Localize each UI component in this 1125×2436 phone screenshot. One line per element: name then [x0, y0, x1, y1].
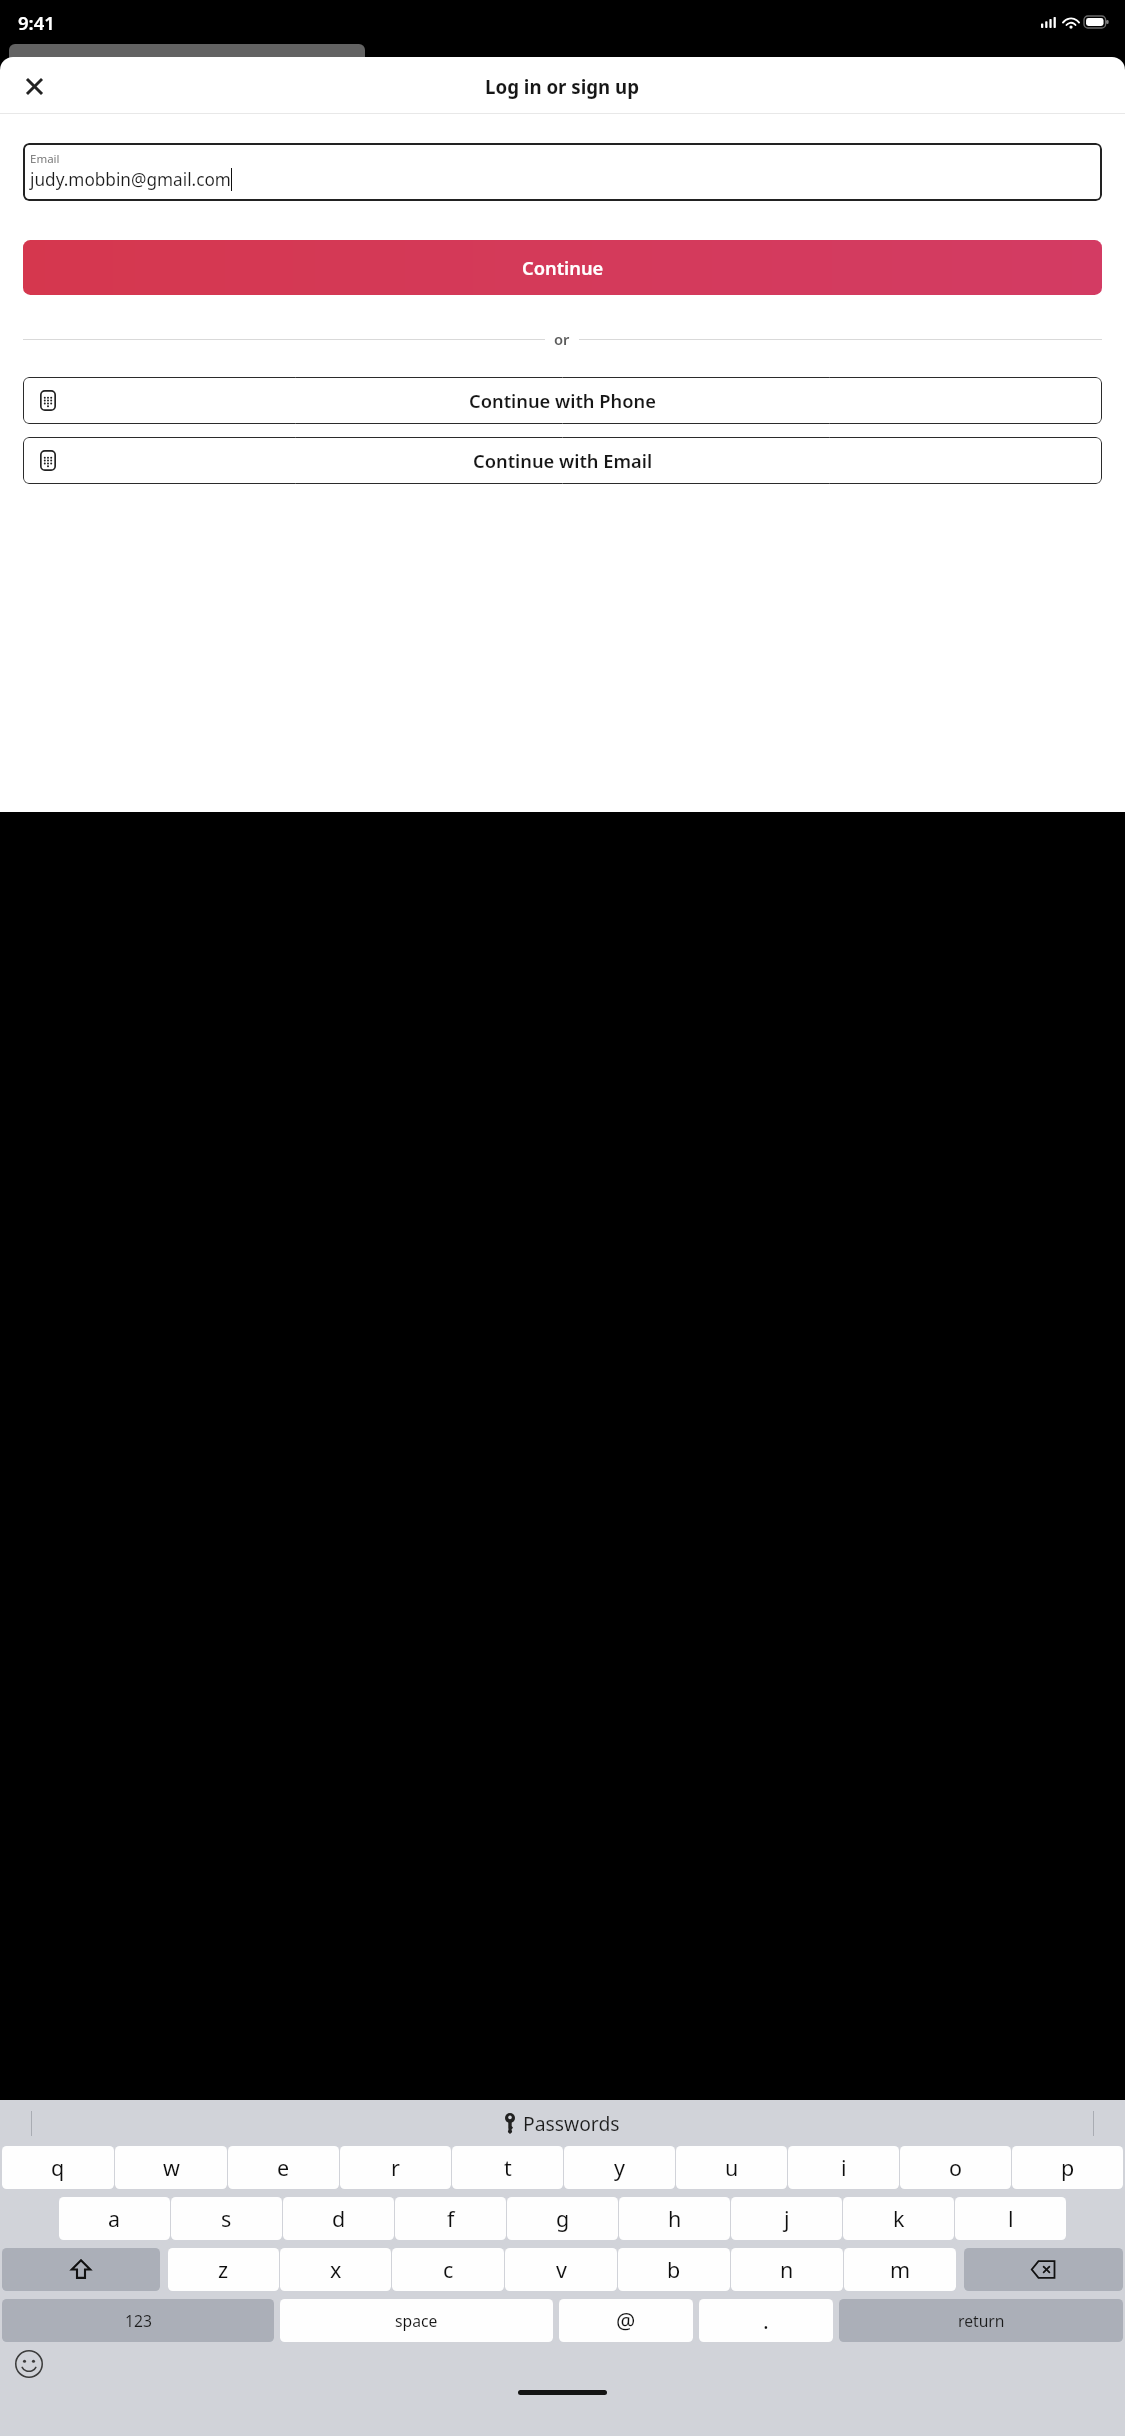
staticText: o [949, 2153, 963, 2182]
staticText: 123 [125, 2310, 152, 2331]
button[interactable]: c [392, 2248, 504, 2291]
button[interactable]: m [844, 2248, 956, 2291]
staticText: Continue [522, 255, 604, 280]
staticText: b [667, 2255, 681, 2284]
staticText: . [763, 2306, 769, 2335]
staticText: a [108, 2204, 121, 2233]
staticText: q [51, 2153, 65, 2182]
button[interactable]: r [340, 2146, 451, 2189]
staticText: u [725, 2153, 739, 2182]
button[interactable]: Continue with Email [23, 437, 1102, 484]
staticText: Passwords [523, 2110, 620, 2136]
button[interactable]: g [507, 2197, 618, 2240]
staticText: i [841, 2153, 847, 2182]
button[interactable]: s [171, 2197, 282, 2240]
staticText: 9:41 [18, 10, 55, 35]
button[interactable]: f [395, 2197, 506, 2240]
staticText: m [890, 2255, 911, 2284]
staticText: z [218, 2255, 229, 2284]
button[interactable]: Return [839, 2299, 1123, 2342]
button[interactable]: h [619, 2197, 730, 2240]
staticText: v [556, 2255, 567, 2284]
button[interactable]: Email [23, 143, 1102, 201]
button[interactable]: x [280, 2248, 391, 2291]
button[interactable]: y [564, 2146, 675, 2189]
button[interactable]: u [676, 2146, 787, 2189]
button[interactable]: v [505, 2248, 617, 2291]
staticText: judy.mobbin@gmail.com [30, 168, 231, 191]
staticText: or [554, 329, 570, 349]
button[interactable]: j [731, 2197, 842, 2240]
button[interactable]: . [699, 2299, 833, 2342]
button[interactable]: w [115, 2146, 227, 2189]
button[interactable]: Passwords [501, 2108, 624, 2138]
button[interactable]: space [280, 2299, 553, 2342]
button[interactable]: d [283, 2197, 394, 2240]
staticText: y [614, 2153, 625, 2182]
staticText: l [1008, 2204, 1014, 2233]
staticText: x [330, 2255, 342, 2284]
staticText: e [277, 2153, 290, 2182]
button[interactable]: Shift [2, 2248, 160, 2291]
button[interactable]: Continue with Phone [23, 377, 1102, 424]
button[interactable]: e [228, 2146, 339, 2189]
staticText: r [391, 2153, 400, 2182]
staticText: k [893, 2204, 905, 2233]
button[interactable]: k [843, 2197, 954, 2240]
staticText: h [668, 2204, 682, 2233]
button[interactable]: Continue [23, 240, 1102, 295]
button[interactable]: @ [559, 2299, 693, 2342]
button[interactable]: q [2, 2146, 114, 2189]
staticText: Continue with Phone [469, 388, 656, 413]
button[interactable]: a [59, 2197, 170, 2240]
staticText: space [395, 2310, 438, 2331]
button[interactable]: i [788, 2146, 899, 2189]
button[interactable]: Emoji [13, 2348, 45, 2380]
staticText: Continue with Email [473, 448, 653, 473]
button[interactable]: Backspace [964, 2248, 1123, 2291]
staticText: j [784, 2204, 790, 2233]
button[interactable]: o [900, 2146, 1011, 2189]
staticText: Email [30, 151, 60, 167]
staticText: d [332, 2204, 346, 2233]
button[interactable]: p [1012, 2146, 1123, 2189]
button[interactable]: b [618, 2248, 730, 2291]
staticText: Log in or sign up [485, 74, 640, 99]
button[interactable]: z [168, 2248, 279, 2291]
staticText: g [556, 2204, 570, 2233]
staticText: return [958, 2310, 1005, 2331]
staticText: w [163, 2153, 180, 2182]
staticText: p [1061, 2153, 1075, 2182]
staticText: t [504, 2153, 512, 2182]
button[interactable]: Close [12, 64, 56, 108]
button[interactable]: Numbers [2, 2299, 274, 2342]
staticText: n [780, 2255, 794, 2284]
staticText: @ [616, 2306, 636, 2335]
staticText: s [221, 2204, 232, 2233]
staticText: f [447, 2204, 455, 2233]
button[interactable]: t [452, 2146, 563, 2189]
staticText: c [443, 2255, 454, 2284]
button[interactable]: n [731, 2248, 843, 2291]
button[interactable]: l [955, 2197, 1066, 2240]
